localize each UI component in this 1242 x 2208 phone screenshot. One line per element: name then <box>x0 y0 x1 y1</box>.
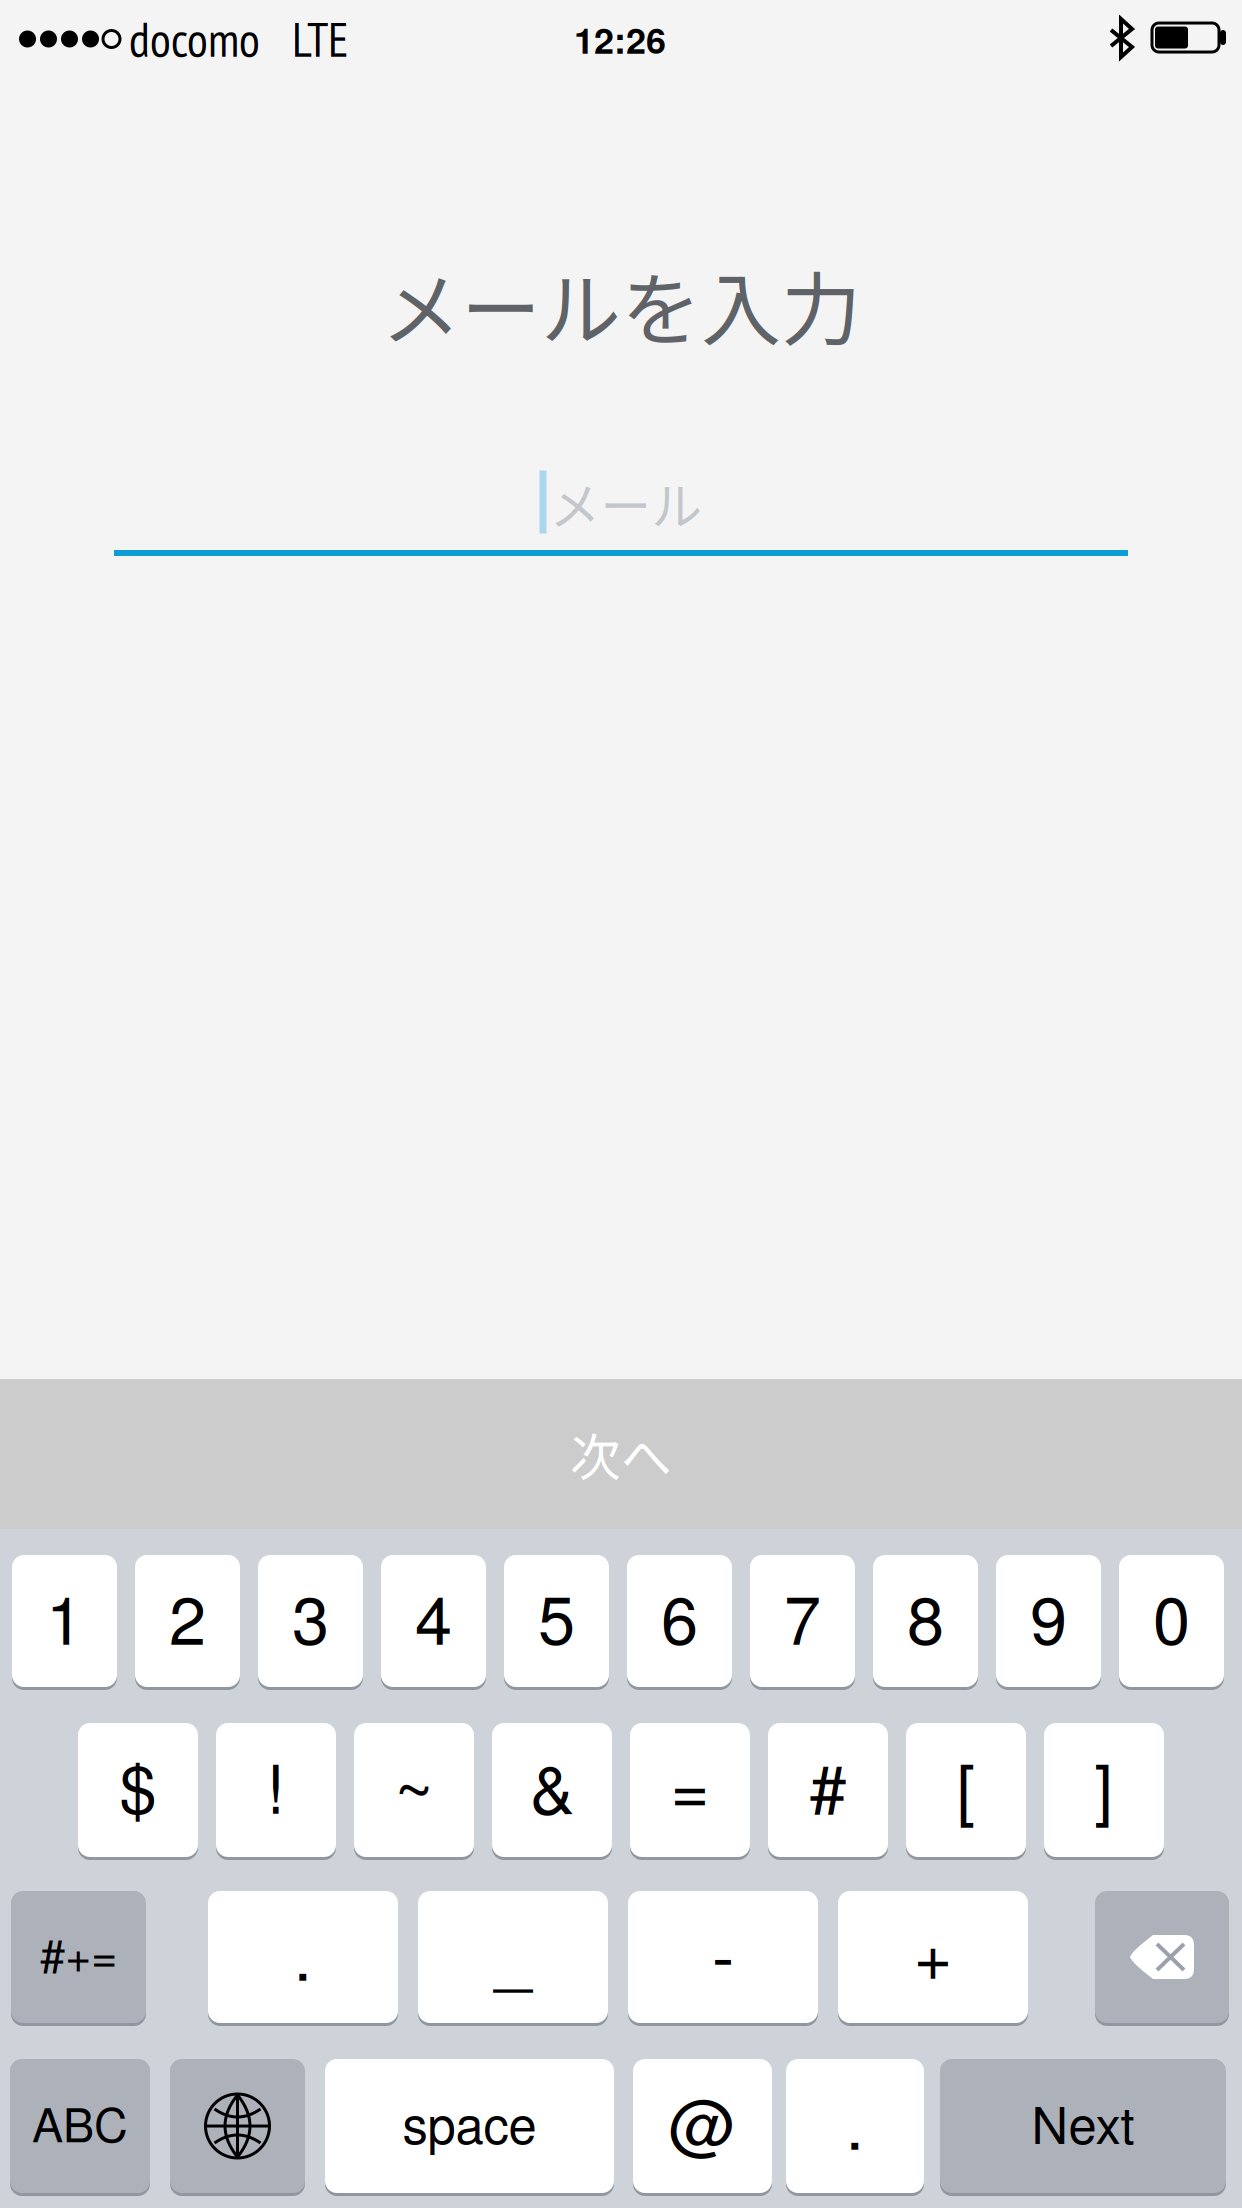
staticText: #+= <box>40 1920 117 1985</box>
staticText: . <box>845 2073 864 2169</box>
button[interactable]: . <box>786 2057 924 2195</box>
staticText: Next <box>1031 2086 1134 2158</box>
staticText: 12:26 <box>574 13 666 65</box>
staticText: ] <box>1094 1737 1113 1833</box>
staticText: space <box>402 2086 536 2158</box>
button[interactable]: 6 <box>627 1553 732 1689</box>
button[interactable]: #+= <box>11 1889 146 2025</box>
button[interactable]: # <box>768 1721 888 1859</box>
button[interactable]: . <box>208 1889 398 2025</box>
staticText: ! <box>266 1737 285 1833</box>
staticText: + <box>913 1904 952 2000</box>
button[interactable]: $ <box>78 1721 198 1859</box>
button[interactable]: + <box>838 1889 1028 2025</box>
button[interactable]: 0 <box>1119 1553 1224 1689</box>
staticText: 5 <box>538 1568 575 1664</box>
staticText: docomo <box>129 8 260 70</box>
staticText: [ <box>956 1737 975 1833</box>
button[interactable]: ! <box>216 1721 336 1859</box>
button[interactable]: @ <box>633 2057 772 2195</box>
staticText: 4 <box>415 1568 452 1664</box>
button[interactable]: 3 <box>258 1553 363 1689</box>
staticText: $ <box>119 1737 156 1833</box>
staticText: 2 <box>169 1568 206 1664</box>
staticText: _ <box>494 1904 531 2000</box>
staticText: 3 <box>292 1568 329 1664</box>
button[interactable]: ] <box>1044 1721 1164 1859</box>
button[interactable]: space <box>325 2057 614 2195</box>
button[interactable]: 4 <box>381 1553 486 1689</box>
button[interactable]: 8 <box>873 1553 978 1689</box>
staticText: # <box>809 1737 846 1833</box>
button[interactable]: _ <box>418 1889 608 2025</box>
button[interactable]: ~ <box>354 1721 474 1859</box>
staticText: ABC <box>32 2089 128 2155</box>
staticText: 1 <box>46 1568 83 1664</box>
staticText: 6 <box>661 1568 698 1664</box>
staticText: LTE <box>292 8 349 70</box>
button[interactable]: Next keyboard <box>170 2057 305 2195</box>
staticText: 7 <box>784 1568 821 1664</box>
staticText: - <box>712 1904 734 2000</box>
staticText: 8 <box>907 1568 944 1664</box>
staticText: 0 <box>1153 1568 1190 1664</box>
staticText: & <box>530 1737 574 1833</box>
button[interactable]: 次へ <box>0 1379 1242 1529</box>
staticText: @ <box>668 2073 736 2169</box>
button[interactable]: 7 <box>750 1553 855 1689</box>
staticText: ~ <box>394 1737 433 1833</box>
button[interactable]: 9 <box>996 1553 1101 1689</box>
button[interactable]: [ <box>906 1721 1026 1859</box>
button[interactable]: Next <box>940 2057 1226 2195</box>
staticText: 9 <box>1030 1568 1067 1664</box>
staticText: メールを入力 <box>381 246 861 362</box>
staticText: . <box>293 1904 312 2000</box>
button[interactable]: - <box>628 1889 818 2025</box>
button[interactable]: & <box>492 1721 612 1859</box>
button[interactable]: ABC <box>10 2057 150 2195</box>
button[interactable]: Delete <box>1095 1889 1229 2025</box>
button[interactable]: 2 <box>135 1553 240 1689</box>
staticText: 次へ <box>570 1417 672 1491</box>
button[interactable]: 5 <box>504 1553 609 1689</box>
staticText: = <box>670 1737 709 1833</box>
staticText: メール <box>549 466 702 540</box>
button[interactable]: = <box>630 1721 750 1859</box>
button[interactable]: 1 <box>12 1553 117 1689</box>
